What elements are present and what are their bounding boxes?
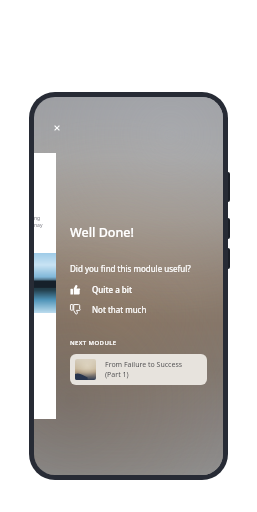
- staticText: nay: [34, 222, 43, 229]
- staticText: ng: [34, 215, 41, 222]
- staticText: Not that much: [92, 304, 147, 315]
- staticText: Quite a bit: [92, 284, 133, 295]
- button[interactable]: Close: [48, 119, 66, 137]
- staticText: NEXT MODULE: [70, 339, 117, 347]
- staticText: (Part 1): [105, 370, 129, 380]
- staticText: From Failure to Success: [105, 360, 183, 370]
- button[interactable]: From Failure to Success: [70, 354, 207, 385]
- staticText: Well Done!: [70, 224, 134, 241]
- button[interactable]: Quite a bit: [70, 284, 207, 295]
- button[interactable]: Not that much: [70, 304, 207, 315]
- staticText: Did you find this module useful?: [70, 263, 191, 274]
